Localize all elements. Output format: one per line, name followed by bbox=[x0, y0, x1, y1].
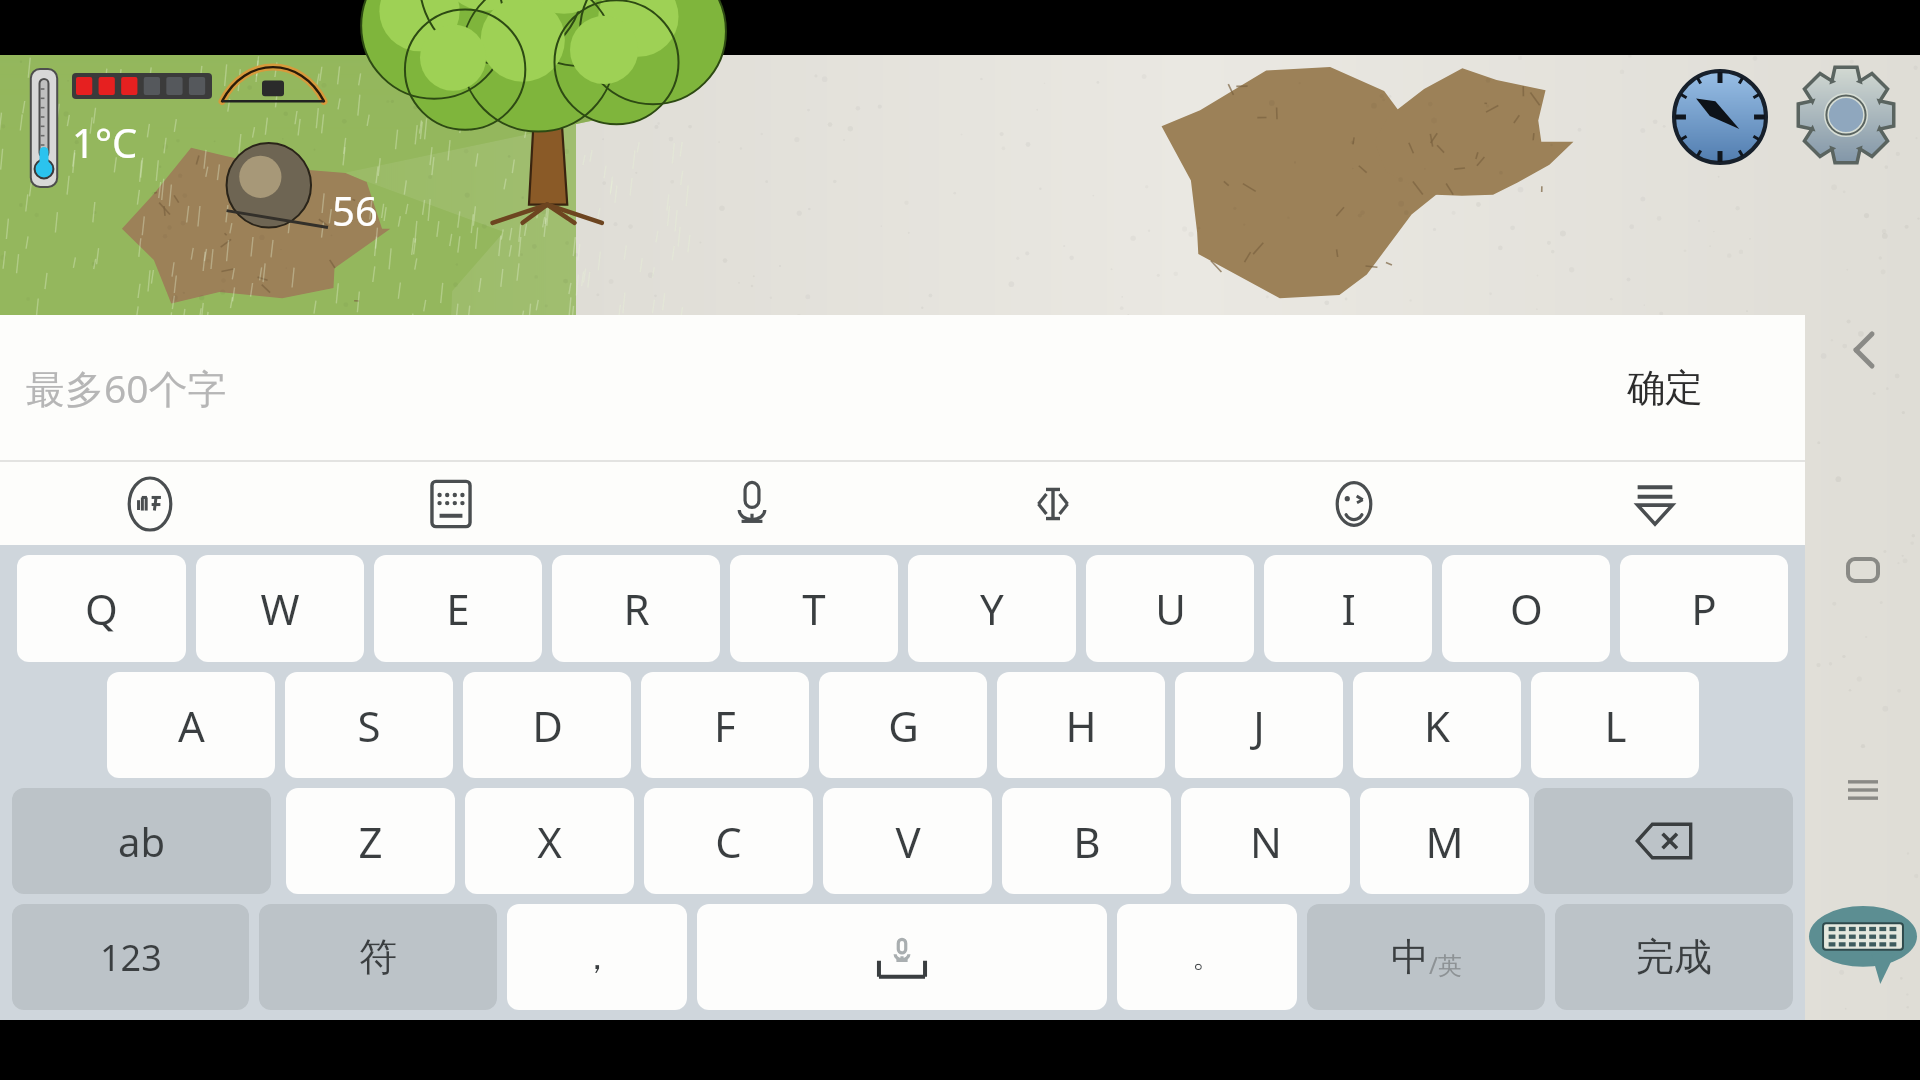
staticText: C bbox=[715, 813, 742, 870]
staticText: ab bbox=[118, 814, 166, 868]
staticText: L bbox=[1604, 697, 1627, 754]
staticText: /英 bbox=[1429, 948, 1462, 981]
staticText: S bbox=[357, 697, 381, 754]
button[interactable]: Keyboard layout bbox=[300, 462, 601, 545]
staticText: 中 bbox=[1391, 933, 1429, 981]
button[interactable]: Space bbox=[697, 904, 1107, 1010]
staticText: X bbox=[537, 813, 562, 870]
button[interactable]: Back bbox=[1828, 315, 1898, 385]
button[interactable]: Emoji bbox=[1203, 462, 1504, 545]
button[interactable]: B bbox=[1002, 788, 1171, 894]
staticText: P bbox=[1691, 580, 1717, 637]
staticText: R bbox=[623, 580, 650, 637]
staticText: U bbox=[1155, 580, 1186, 637]
button[interactable]: I bbox=[1264, 555, 1432, 662]
button[interactable]: 确定 bbox=[1613, 354, 1717, 422]
button[interactable]: Input method bbox=[0, 462, 300, 545]
staticText: B bbox=[1073, 813, 1101, 870]
staticText: Z bbox=[358, 813, 383, 870]
button[interactable]: K bbox=[1353, 672, 1521, 778]
button[interactable]: 最多60个字 bbox=[0, 315, 1805, 460]
staticText: ， bbox=[580, 936, 614, 979]
staticText: Q bbox=[85, 580, 118, 637]
staticText: I bbox=[1341, 580, 1356, 637]
staticText: O bbox=[1510, 580, 1543, 637]
button[interactable]: N bbox=[1181, 788, 1350, 894]
button[interactable]: D bbox=[463, 672, 631, 778]
staticText: F bbox=[714, 697, 736, 754]
button[interactable]: C bbox=[644, 788, 813, 894]
button[interactable]: A bbox=[107, 672, 275, 778]
button[interactable]: Hide keyboard bbox=[1504, 462, 1805, 545]
staticText: N bbox=[1250, 813, 1282, 870]
button[interactable]: 。 bbox=[1117, 904, 1297, 1010]
button[interactable]: Q bbox=[17, 555, 186, 662]
button[interactable]: X bbox=[465, 788, 634, 894]
button[interactable]: 中 bbox=[1307, 904, 1545, 1010]
button[interactable]: Show keyboard bbox=[1809, 906, 1917, 984]
button[interactable]: U bbox=[1086, 555, 1254, 662]
staticText: H bbox=[1065, 697, 1097, 754]
staticText: Y bbox=[980, 580, 1004, 637]
button[interactable]: Menu bbox=[1828, 755, 1898, 825]
staticText: K bbox=[1424, 697, 1450, 754]
staticText: 完成 bbox=[1636, 933, 1712, 981]
button[interactable]: 123 bbox=[12, 904, 249, 1010]
button[interactable]: T bbox=[730, 555, 898, 662]
button[interactable]: Settings bbox=[1794, 63, 1898, 167]
staticText: 56 bbox=[332, 183, 378, 237]
button[interactable]: G bbox=[819, 672, 987, 778]
staticText: W bbox=[260, 580, 300, 637]
button[interactable]: Move cursor bbox=[902, 462, 1203, 545]
button[interactable]: Compass bbox=[1670, 67, 1770, 167]
button[interactable]: O bbox=[1442, 555, 1610, 662]
button[interactable]: 完成 bbox=[1555, 904, 1793, 1010]
staticText: T bbox=[802, 580, 826, 637]
button[interactable]: F bbox=[641, 672, 809, 778]
button[interactable]: L bbox=[1531, 672, 1699, 778]
staticText: D bbox=[532, 697, 563, 754]
button[interactable]: V bbox=[823, 788, 992, 894]
staticText: 123 bbox=[100, 933, 162, 982]
staticText: V bbox=[895, 813, 921, 870]
button[interactable]: Z bbox=[286, 788, 455, 894]
button[interactable]: E bbox=[374, 555, 542, 662]
button[interactable]: S bbox=[285, 672, 453, 778]
button[interactable]: W bbox=[196, 555, 364, 662]
staticText: 1°C bbox=[72, 115, 138, 169]
button[interactable]: 符 bbox=[259, 904, 497, 1010]
button[interactable]: H bbox=[997, 672, 1165, 778]
staticText: 最多60个字 bbox=[26, 361, 227, 414]
staticText: 确定 bbox=[1627, 364, 1703, 412]
staticText: J bbox=[1253, 697, 1265, 754]
button[interactable]: M bbox=[1360, 788, 1529, 894]
button[interactable]: Home bbox=[1828, 535, 1898, 605]
button[interactable]: Y bbox=[908, 555, 1076, 662]
button[interactable]: Backspace bbox=[1534, 788, 1793, 894]
staticText: 符 bbox=[359, 933, 397, 981]
staticText: A bbox=[178, 697, 205, 754]
button[interactable]: ab bbox=[12, 788, 271, 894]
button[interactable]: Voice input bbox=[601, 462, 902, 545]
staticText: 。 bbox=[1192, 938, 1222, 976]
button[interactable]: P bbox=[1620, 555, 1788, 662]
button[interactable]: R bbox=[552, 555, 720, 662]
staticText: M bbox=[1425, 813, 1464, 870]
staticText: E bbox=[446, 580, 470, 637]
staticText: G bbox=[888, 697, 919, 754]
button[interactable]: ， bbox=[507, 904, 687, 1010]
button[interactable]: J bbox=[1175, 672, 1343, 778]
